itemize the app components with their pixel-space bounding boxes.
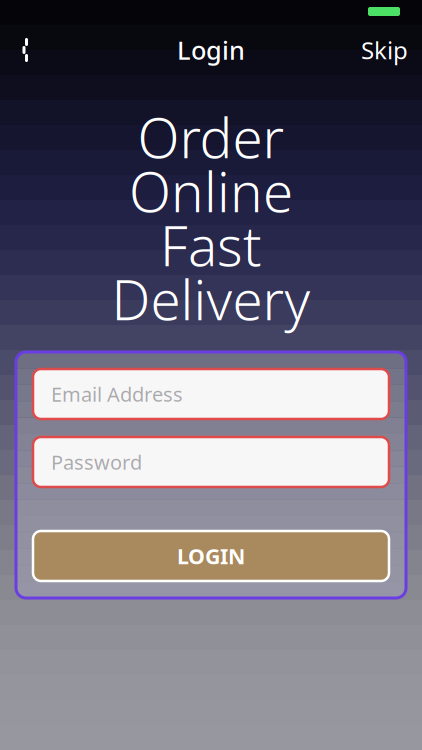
staticText: Email Address	[51, 381, 183, 407]
button[interactable]: Password	[33, 437, 389, 487]
staticText: Delivery	[111, 263, 310, 335]
button[interactable]: Email Address	[33, 369, 389, 419]
staticText: Login	[177, 33, 245, 67]
staticText: Order	[137, 101, 284, 173]
staticText: Password	[51, 449, 142, 475]
staticText: Fast	[160, 209, 262, 281]
button[interactable]: LOGIN	[33, 531, 389, 581]
staticText: Skip	[361, 34, 408, 66]
staticText: LOGIN	[177, 542, 245, 570]
button[interactable]: Back	[0, 28, 44, 72]
button[interactable]: Skip	[347, 28, 422, 72]
staticText: Online	[129, 155, 293, 227]
